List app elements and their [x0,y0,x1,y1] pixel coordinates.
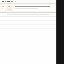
button[interactable] [7,5,12,11]
button[interactable] [0,13,56,16]
button[interactable] [14,5,55,11]
button[interactable]: Side rail [56,0,64,64]
button[interactable] [1,5,5,11]
